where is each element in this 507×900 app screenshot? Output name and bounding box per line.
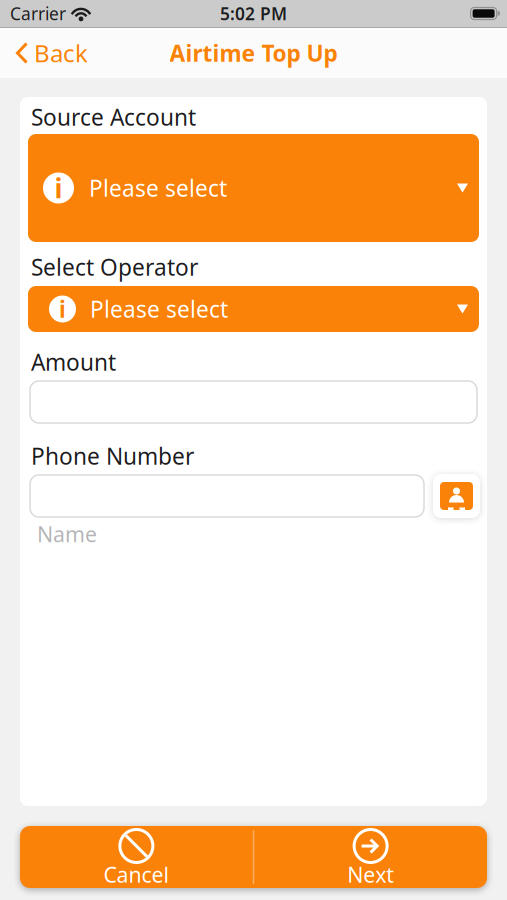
staticText: Cancel xyxy=(103,860,169,889)
button[interactable]: Phone Number xyxy=(30,475,424,517)
staticText: Airtime Top Up xyxy=(169,38,337,68)
staticText: Please select xyxy=(89,173,227,203)
staticText: Carrier xyxy=(10,2,66,25)
staticText: Select Operator xyxy=(31,252,198,282)
staticText: 5:02 PM xyxy=(220,2,287,25)
staticText: Phone Number xyxy=(31,441,194,471)
staticText: i xyxy=(59,294,66,324)
staticText: Next xyxy=(347,860,394,889)
staticText: Source Account xyxy=(31,102,196,132)
button[interactable]: Amount xyxy=(30,381,477,423)
staticText: Name xyxy=(37,520,97,548)
button[interactable]: Next xyxy=(254,829,487,884)
staticText: i xyxy=(54,170,62,206)
button[interactable]: Back xyxy=(0,41,88,65)
button[interactable]: Select Operator – Please select xyxy=(28,286,479,332)
staticText: Please select xyxy=(90,294,228,324)
staticText: Amount xyxy=(31,347,116,377)
button[interactable]: Source Account – Please select xyxy=(28,134,479,242)
button[interactable]: Cancel xyxy=(20,829,253,884)
button[interactable]: Pick Contact xyxy=(433,474,480,518)
staticText: Back xyxy=(34,37,88,69)
